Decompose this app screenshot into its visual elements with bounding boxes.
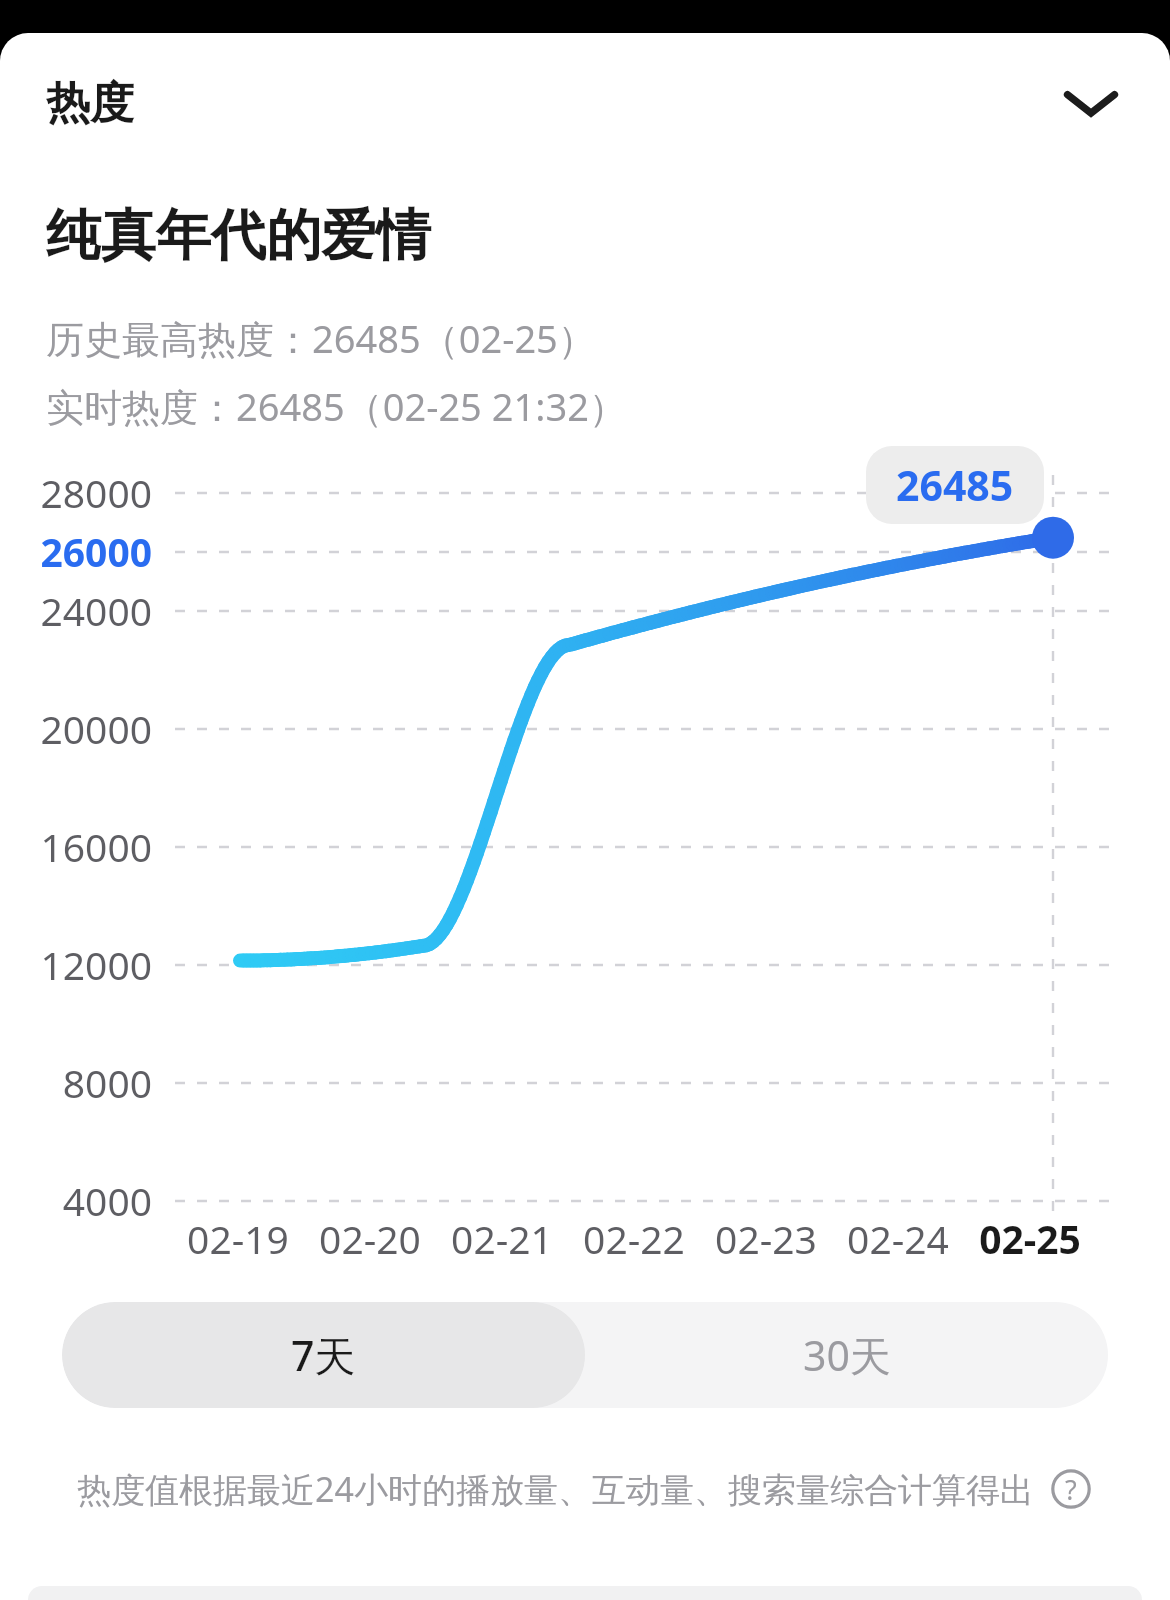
staticText: 纯真年代的爱情 [46,201,431,270]
staticText: 02-24 [826,1212,970,1265]
staticText: 4000 [0,1174,152,1227]
staticText: 7天 [291,1327,356,1383]
staticText: 热度值根据最近24小时的播放量、互动量、搜索量综合计算得出 [77,1466,1034,1512]
staticText: 28000 [0,466,152,519]
staticText: 02-25 [958,1212,1102,1265]
staticText: 30天 [803,1327,891,1383]
staticText: 8000 [0,1056,152,1109]
button[interactable]: 7天 [62,1302,585,1408]
staticText: 12000 [0,938,152,991]
button[interactable]: Collapse [1052,64,1130,142]
staticText: 历史最高热度：26485（02-25） [46,312,596,364]
button[interactable]: 30天 [585,1302,1108,1408]
staticText: 02-20 [298,1212,442,1265]
staticText: 实时热度：26485（02-25 21:32） [46,380,627,432]
staticText: 16000 [0,820,152,873]
staticText: 热度 [46,76,134,131]
staticText: ? [1065,1471,1077,1508]
staticText: 02-23 [694,1212,838,1265]
staticText: 24000 [0,584,152,637]
staticText: 26485 [896,457,1014,513]
button[interactable]: 26485 [866,446,1044,524]
button[interactable]: 热度 [0,33,1170,173]
button[interactable]: Help [1048,1466,1094,1512]
staticText: 20000 [0,702,152,755]
staticText: 02-21 [430,1212,574,1265]
staticText: 02-19 [166,1212,310,1265]
staticText: 02-22 [562,1212,706,1265]
staticText: 26000 [0,525,152,578]
